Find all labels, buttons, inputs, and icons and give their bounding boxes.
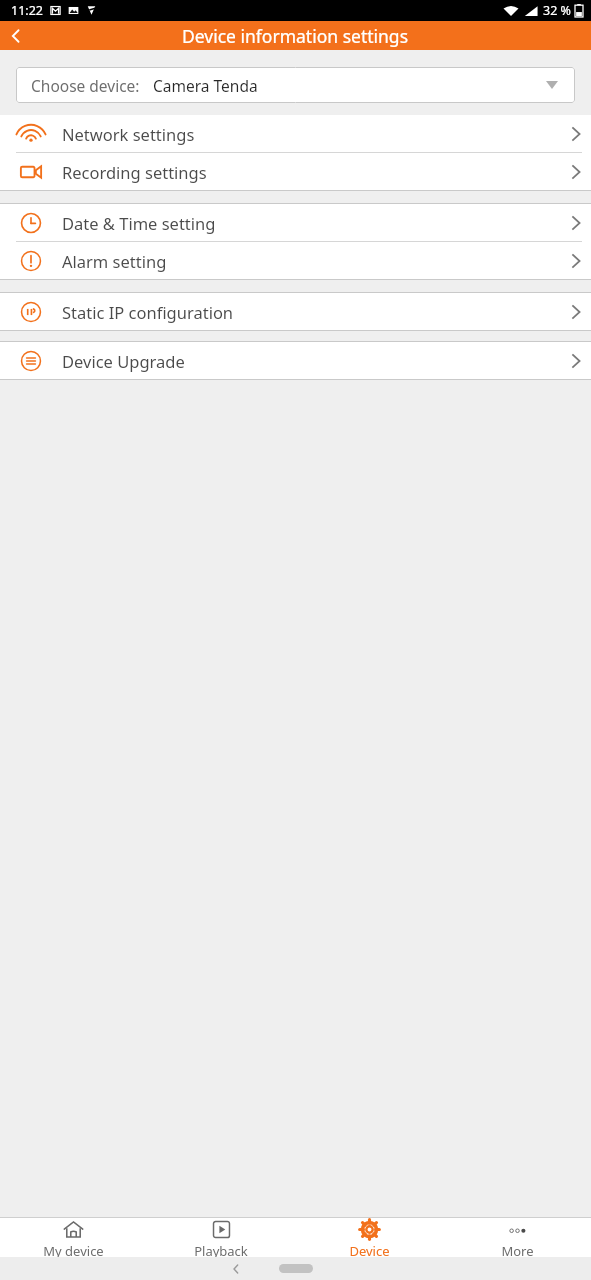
staticText: Device information settings	[182, 24, 409, 48]
staticText: Playback	[194, 1242, 248, 1257]
staticText: Camera Tenda	[153, 75, 258, 96]
button[interactable]: Recording settings	[0, 153, 591, 190]
staticText: Device Upgrade	[62, 350, 185, 372]
button[interactable]: Choose device:	[16, 67, 575, 103]
staticText: 32 %	[543, 2, 571, 19]
other: Back	[229, 1262, 243, 1276]
staticText: 11:22	[11, 2, 43, 19]
staticText: Static IP configuration	[62, 301, 234, 323]
staticText: Date & Time setting	[62, 212, 216, 234]
button[interactable]: My device	[0, 1218, 147, 1257]
staticText: Device	[349, 1242, 390, 1257]
button[interactable]: Alarm setting	[0, 242, 591, 279]
staticText: My device	[43, 1242, 104, 1257]
staticText: Network settings	[62, 123, 195, 145]
button[interactable]: Playback	[147, 1218, 295, 1257]
button[interactable]: Back	[0, 21, 32, 50]
staticText: More	[501, 1242, 534, 1257]
staticText: Alarm setting	[62, 250, 167, 272]
button[interactable]: Network settings	[0, 115, 591, 152]
button[interactable]: More	[443, 1218, 591, 1257]
button[interactable]: Device Upgrade	[0, 342, 591, 379]
other: Home	[279, 1264, 313, 1273]
button[interactable]: Device	[295, 1218, 443, 1257]
button[interactable]: Date & Time setting	[0, 204, 591, 241]
staticText: Choose device:	[31, 75, 140, 96]
staticText: Recording settings	[62, 161, 207, 183]
button[interactable]: Static IP configuration	[0, 293, 591, 330]
